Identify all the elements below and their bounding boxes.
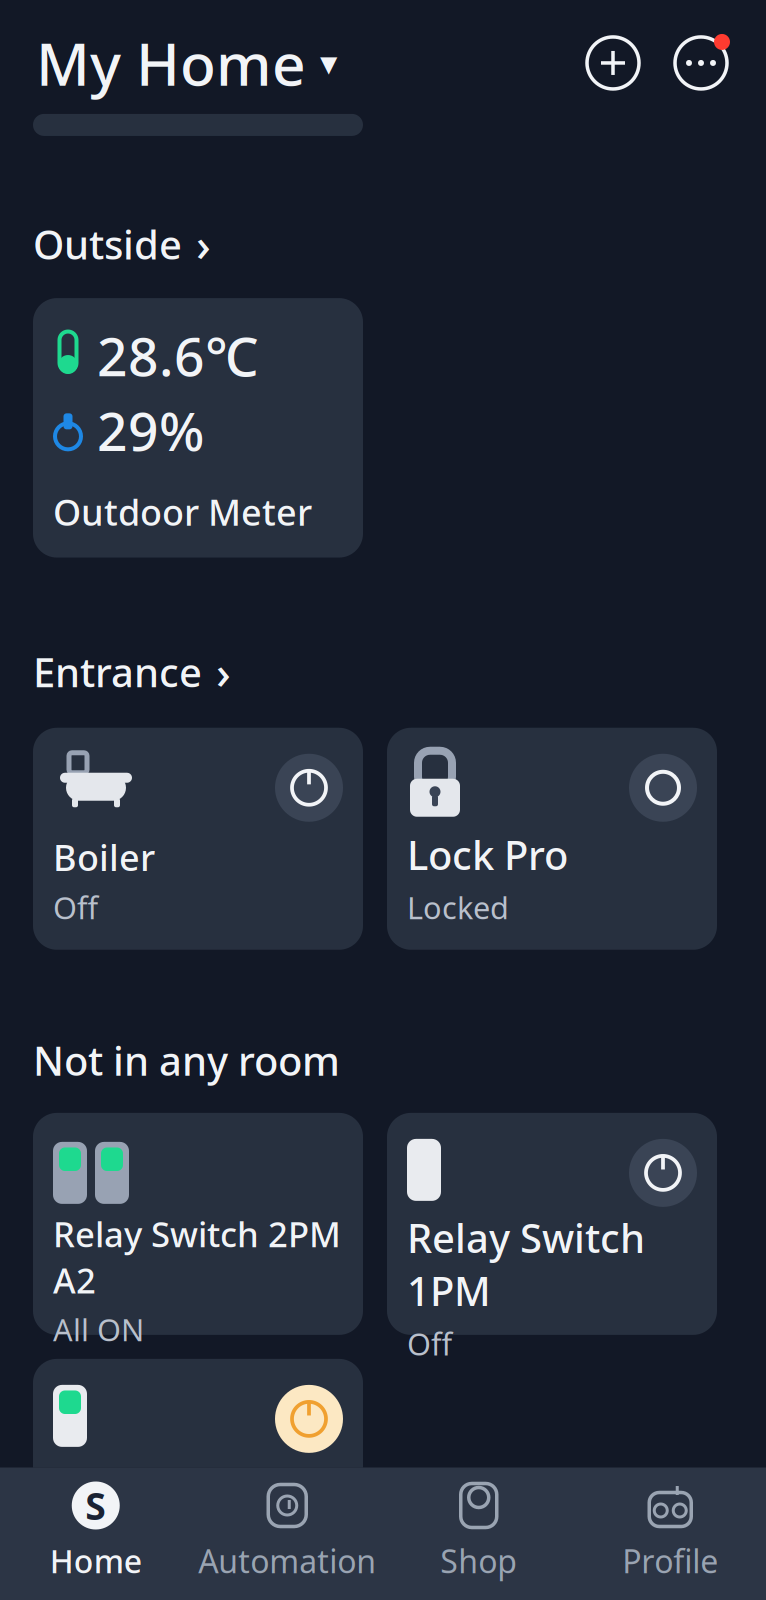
- button[interactable]: Add: [584, 34, 642, 92]
- button[interactable]: Relay Switch 2PM A2: [33, 1113, 363, 1335]
- button[interactable]: Relay Switch 1: [33, 1359, 363, 1581]
- button[interactable]: Shop: [383, 1467, 574, 1600]
- staticText: All ON: [53, 1309, 144, 1350]
- staticText: On: [53, 1518, 96, 1559]
- button[interactable]: Relay Switch 1PM: [387, 1113, 717, 1335]
- staticText: 28.6℃: [97, 320, 258, 391]
- button[interactable]: Lock Pro: [387, 728, 717, 950]
- staticText: Profile: [622, 1539, 718, 1582]
- button[interactable]: Entrance: [0, 642, 766, 702]
- staticText: Locked: [407, 887, 509, 928]
- staticText: Shop: [440, 1539, 517, 1582]
- button[interactable]: More options: [672, 34, 730, 92]
- staticText: Off: [53, 887, 98, 928]
- staticText: ▾: [320, 43, 337, 83]
- staticText: Outdoor Meter: [53, 488, 312, 536]
- button[interactable]: Not in any room: [0, 1034, 766, 1087]
- button[interactable]: 28.6℃: [33, 298, 363, 558]
- staticText: Off: [407, 1323, 452, 1364]
- button[interactable]: My Home: [36, 18, 337, 108]
- staticText: Lock Pro: [407, 828, 568, 881]
- staticText: ›: [196, 214, 211, 274]
- staticText: S: [85, 1481, 106, 1530]
- staticText: Relay Switch 1: [53, 1459, 324, 1512]
- staticText: Relay Switch 1PM: [407, 1211, 645, 1317]
- staticText: My Home: [36, 24, 306, 102]
- staticText: Outside: [33, 217, 182, 270]
- staticText: Relay Switch 2PM A2: [53, 1211, 341, 1303]
- staticText: Automation: [198, 1539, 376, 1582]
- staticText: Boiler: [53, 833, 155, 881]
- button[interactable]: Profile: [574, 1467, 766, 1600]
- staticText: Entrance: [33, 645, 202, 698]
- button[interactable]: Outside: [0, 214, 766, 274]
- staticText: ›: [216, 642, 231, 702]
- button[interactable]: S: [0, 1467, 191, 1600]
- button[interactable]: Boiler: [33, 728, 363, 950]
- staticText: Home: [50, 1539, 142, 1582]
- button[interactable]: Automation: [191, 1467, 383, 1600]
- staticText: Not in any room: [33, 1034, 340, 1087]
- staticText: 29%: [97, 395, 204, 466]
